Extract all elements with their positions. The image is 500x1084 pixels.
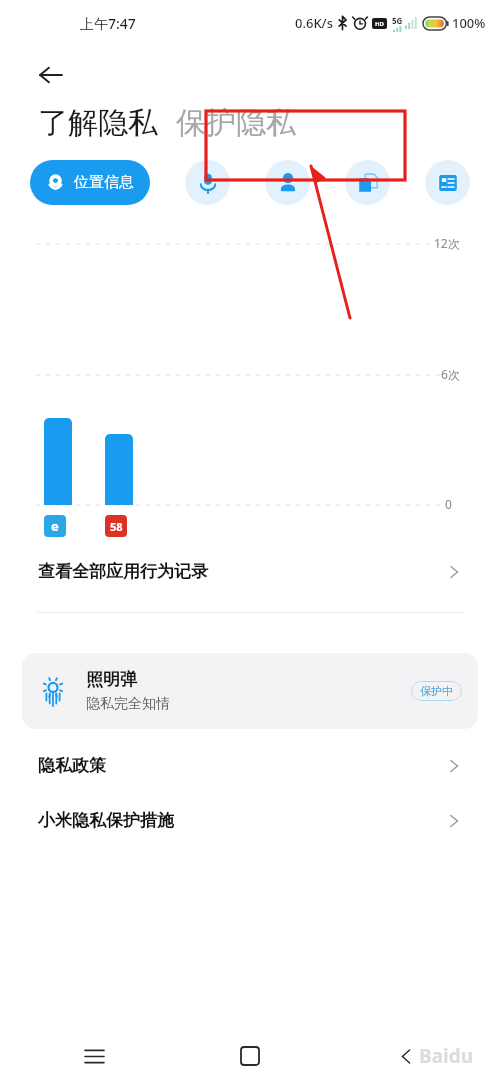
button[interactable]: 隐私政策 bbox=[0, 751, 500, 780]
staticText: e bbox=[51, 517, 59, 535]
button[interactable]: Recents bbox=[70, 1032, 118, 1080]
button[interactable]: Contacts bbox=[265, 160, 310, 205]
button[interactable]: Files bbox=[345, 160, 390, 205]
staticText: 6次 bbox=[441, 366, 460, 382]
staticText: HD bbox=[375, 20, 384, 28]
staticText: 隐私完全知情 bbox=[86, 695, 170, 713]
staticText: 保护隐私 bbox=[176, 104, 296, 142]
staticText: Baidu bbox=[419, 1043, 474, 1069]
staticText: 上午7:47 bbox=[80, 14, 136, 33]
button[interactable]: Home bbox=[226, 1032, 274, 1080]
staticText: 58 bbox=[110, 519, 123, 534]
button[interactable]: 了解隐私 bbox=[38, 104, 158, 142]
staticText: 了解隐私 bbox=[38, 104, 158, 142]
staticText: 12次 bbox=[434, 235, 460, 251]
button[interactable]: Back bbox=[382, 1032, 430, 1080]
button[interactable]: 照明弹 bbox=[22, 653, 478, 729]
staticText: 位置信息 bbox=[74, 173, 134, 192]
button[interactable]: 小米隐私保护措施 bbox=[0, 806, 500, 835]
button[interactable]: 保护隐私 bbox=[176, 104, 296, 142]
staticText: 0.6K/s bbox=[295, 14, 333, 32]
staticText: 0 bbox=[445, 496, 452, 512]
button[interactable]: 查看全部应用行为记录 bbox=[0, 557, 500, 586]
staticText: 100% bbox=[452, 14, 486, 32]
button[interactable]: Microphone bbox=[185, 160, 230, 205]
button[interactable]: Records bbox=[425, 160, 470, 205]
staticText: 小米隐私保护措施 bbox=[38, 810, 174, 831]
staticText: 查看全部应用行为记录 bbox=[38, 561, 208, 582]
staticText: 隐私政策 bbox=[38, 755, 106, 776]
staticText: 5G bbox=[392, 15, 403, 26]
staticText: 照明弹 bbox=[86, 669, 137, 690]
staticText: 保护中 bbox=[420, 684, 453, 698]
button[interactable]: Back bbox=[28, 52, 74, 98]
button[interactable]: 位置信息 bbox=[30, 160, 150, 205]
